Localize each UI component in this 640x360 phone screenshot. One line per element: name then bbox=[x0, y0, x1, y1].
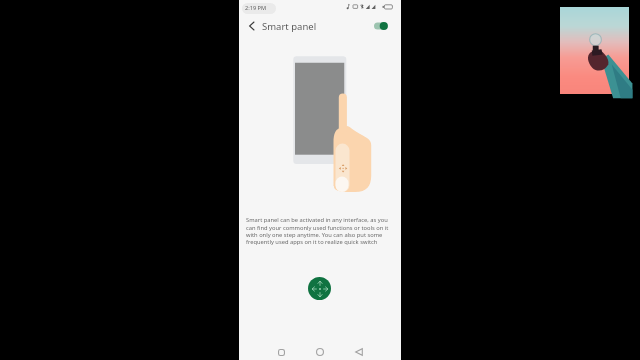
staticText: 2:19 PM bbox=[245, 4, 267, 12]
button[interactable]: Back bbox=[243, 17, 261, 35]
button[interactable]: Back bbox=[349, 342, 369, 360]
button[interactable]: Smart panel on/off bbox=[371, 17, 393, 35]
button[interactable]: Move smart panel button bbox=[308, 277, 331, 300]
staticText: Smart panel can be activated in any inte… bbox=[246, 216, 392, 245]
button[interactable]: Home bbox=[310, 342, 330, 360]
staticText: Smart panel bbox=[262, 20, 317, 33]
button[interactable]: Recent apps bbox=[271, 342, 291, 360]
